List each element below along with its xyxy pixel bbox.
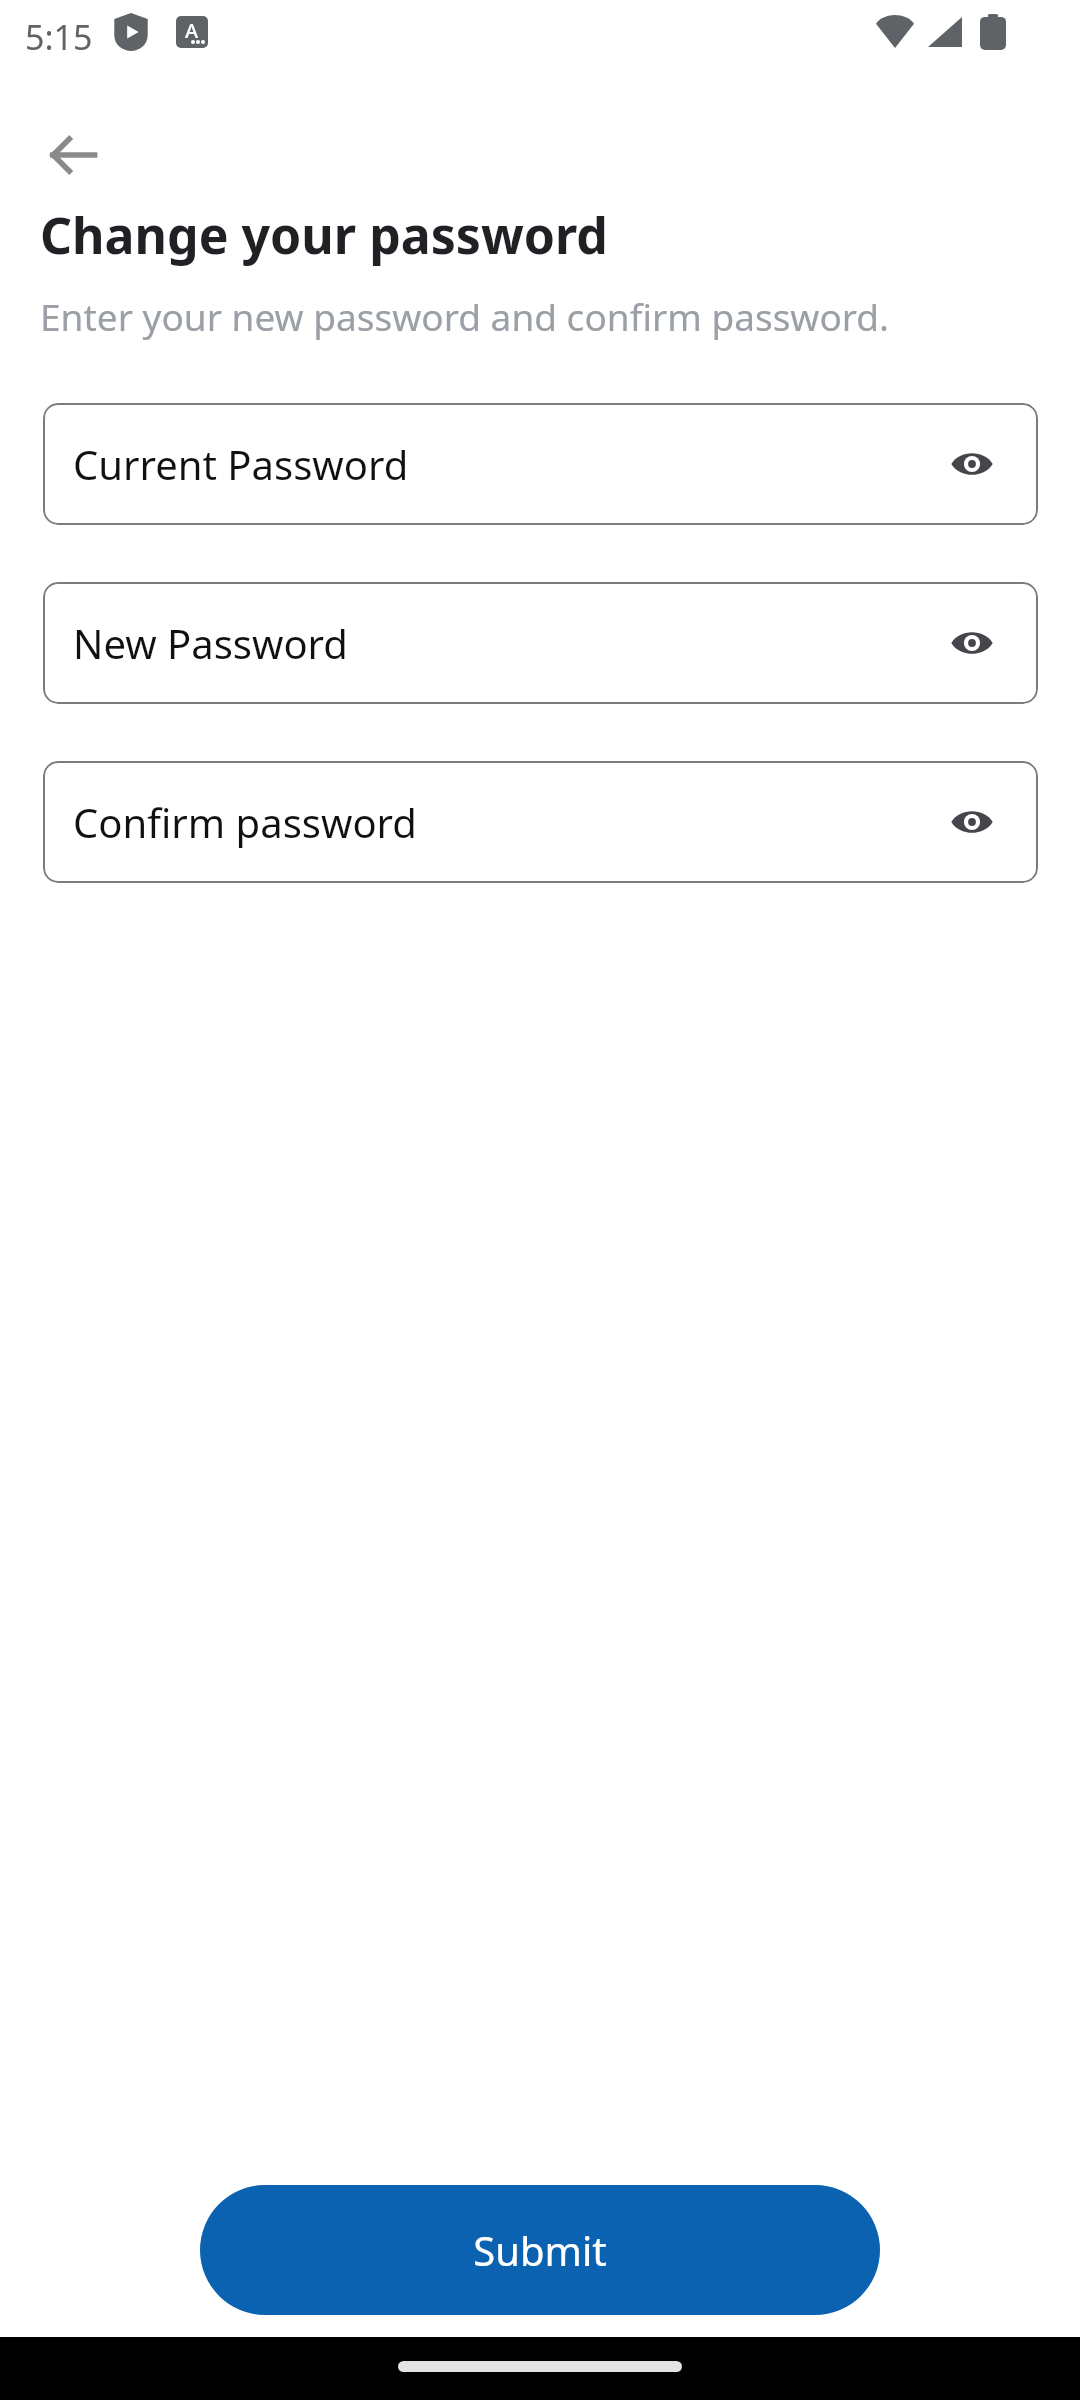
staticText: Enter your new password and confirm pass… [40,291,890,341]
staticText: A [185,17,199,44]
staticText: 5:15 [25,14,93,60]
button[interactable]: Show password [936,786,1008,858]
staticText: Confirm password [73,795,417,849]
staticText: Change your password [40,201,608,269]
staticText: Current Password [73,437,409,491]
staticText: New Password [73,616,348,670]
button[interactable]: Confirm password [43,761,1038,883]
button[interactable]: New Password [43,582,1038,704]
button[interactable]: Show password [936,428,1008,500]
button[interactable]: Submit [200,2185,880,2315]
button[interactable]: Show password [936,607,1008,679]
staticText: Submit [473,2223,607,2277]
button[interactable]: Current Password [43,403,1038,525]
button[interactable]: Back [25,107,121,203]
